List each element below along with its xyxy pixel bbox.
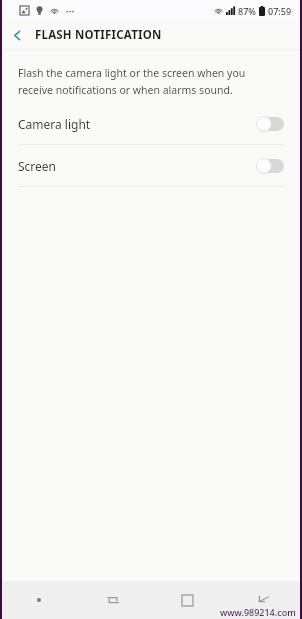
- button[interactable]: Recents: [76, 581, 150, 619]
- button[interactable]: Camera light: [2, 103, 300, 144]
- button[interactable]: Navigate up: [2, 21, 32, 49]
- staticText: 87%: [238, 5, 256, 17]
- staticText: FLASH NOTIFICATION: [35, 27, 162, 43]
- staticText: Screen: [18, 158, 57, 174]
- staticText: www.989214.com: [220, 606, 296, 618]
- button[interactable]: Home: [150, 581, 225, 619]
- button[interactable]: Toggle: [256, 158, 284, 174]
- button[interactable]: Toggle: [256, 116, 284, 132]
- button[interactable]: Back: [225, 581, 300, 619]
- button[interactable]: Screen: [2, 145, 300, 186]
- staticText: 07:59: [268, 5, 292, 17]
- staticText: Flash the camera light or the screen whe…: [18, 66, 276, 97]
- staticText: Camera light: [18, 116, 91, 132]
